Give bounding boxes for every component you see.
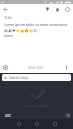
staticText: lorem bbox=[4, 34, 13, 38]
button[interactable]: Reminder bbox=[52, 4, 62, 14]
button[interactable]: Back bbox=[0, 4, 10, 14]
button[interactable]: Backspace bbox=[61, 112, 73, 119]
button[interactable]: ABC bbox=[0, 112, 16, 119]
button[interactable]: Animals bbox=[46, 119, 64, 129]
staticText: Edited 10:24 bbox=[28, 66, 44, 70]
button[interactable]: Search emoji bbox=[2, 74, 71, 81]
staticText: Title bbox=[4, 15, 13, 21]
button[interactable]: Smileys bbox=[28, 119, 46, 129]
staticText: Lorem ipsum dolor sit amet consectetur a… bbox=[4, 22, 69, 27]
button[interactable]: Recent bbox=[10, 119, 28, 129]
staticText: 😀🎉❤️⭐👍🔥🌟😊 bbox=[4, 29, 37, 33]
button[interactable]: Add attachment bbox=[0, 62, 11, 73]
button[interactable]: Pin note bbox=[42, 4, 52, 14]
staticText: No emoji found bbox=[25, 104, 49, 108]
staticText: ABC bbox=[5, 113, 12, 118]
button[interactable]: Archive bbox=[62, 4, 72, 14]
staticText: Search emoji bbox=[9, 76, 29, 80]
button[interactable]: More options bbox=[61, 62, 72, 73]
